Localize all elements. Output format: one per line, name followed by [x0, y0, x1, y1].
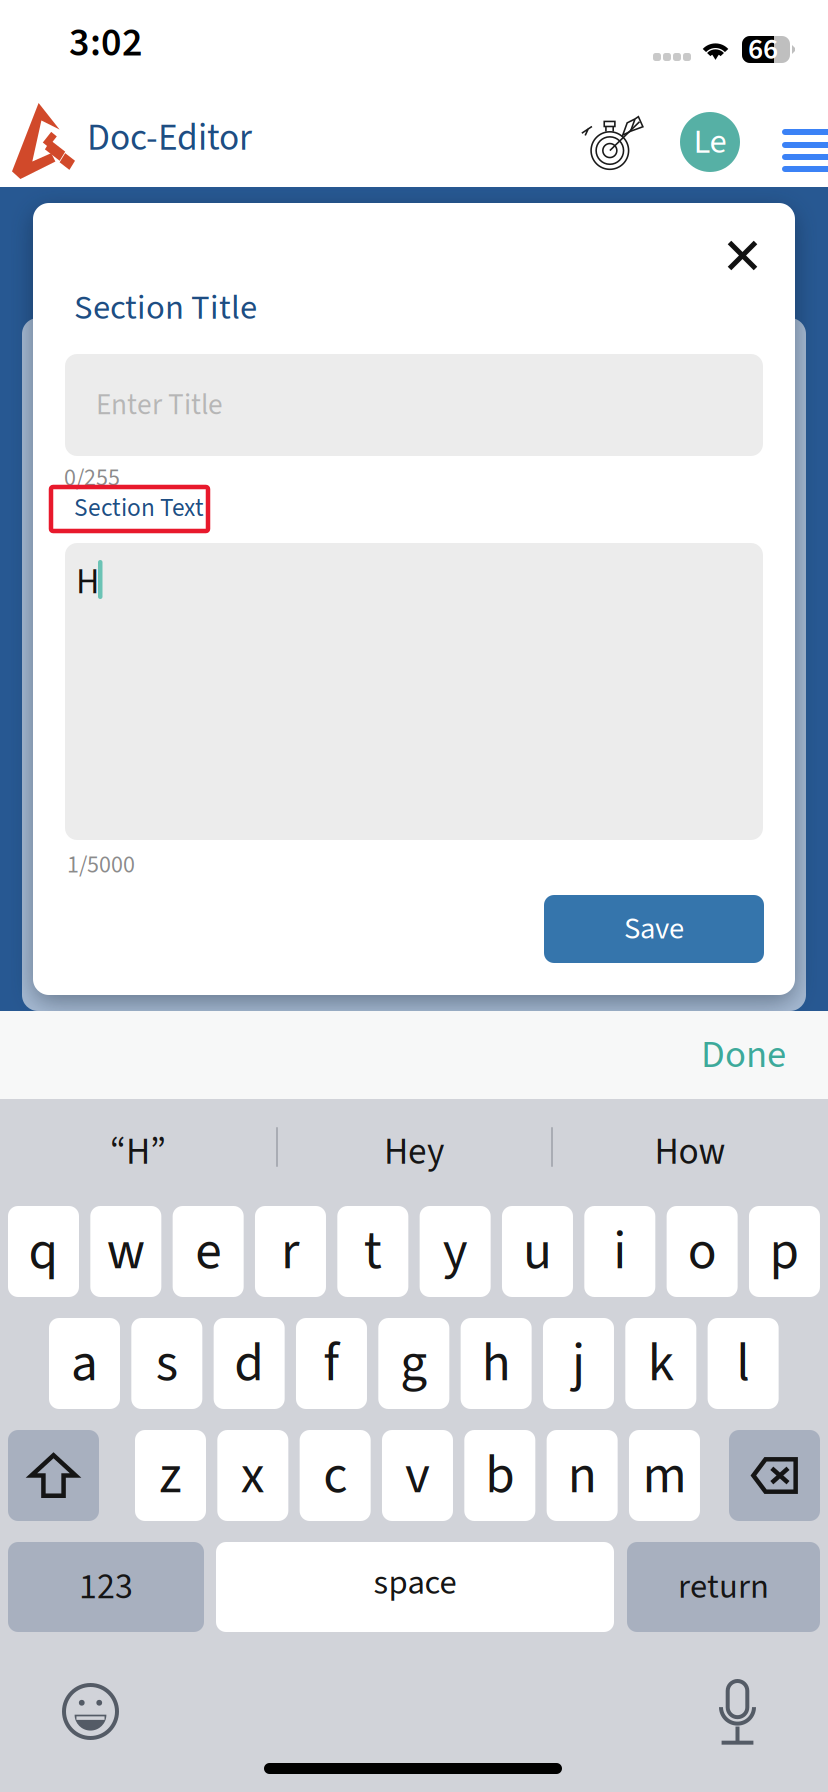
- staticText: v: [405, 1437, 430, 1513]
- button[interactable]: d: [214, 1318, 285, 1409]
- staticText: return: [678, 1562, 769, 1612]
- staticText: i: [613, 1213, 626, 1289]
- staticText: m: [642, 1437, 686, 1513]
- staticText: p: [769, 1213, 799, 1289]
- staticText: l: [736, 1325, 750, 1401]
- staticText: o: [688, 1213, 717, 1289]
- button[interactable]: r: [255, 1206, 326, 1297]
- staticText: w: [107, 1213, 145, 1289]
- button[interactable]: Emoji keyboard: [48, 1669, 133, 1754]
- button[interactable]: Hey: [277, 1106, 551, 1198]
- staticText: s: [156, 1325, 178, 1401]
- staticText: How: [654, 1125, 725, 1179]
- staticText: g: [400, 1325, 427, 1401]
- button[interactable]: y: [420, 1206, 491, 1297]
- button[interactable]: 123: [8, 1542, 204, 1632]
- button[interactable]: f: [296, 1318, 367, 1409]
- button[interactable]: Goals: [588, 115, 644, 171]
- staticText: r: [281, 1213, 300, 1289]
- button[interactable]: i: [584, 1206, 655, 1297]
- staticText: c: [323, 1437, 347, 1513]
- button[interactable]: a: [49, 1318, 120, 1409]
- staticText: Hey: [384, 1125, 444, 1179]
- button[interactable]: x: [217, 1430, 288, 1521]
- staticText: t: [364, 1213, 382, 1289]
- staticText: Done: [701, 1027, 786, 1083]
- button[interactable]: e: [173, 1206, 244, 1297]
- button[interactable]: n: [547, 1430, 618, 1521]
- staticText: n: [568, 1437, 597, 1513]
- staticText: h: [482, 1325, 511, 1401]
- button[interactable]: Account profile: [680, 112, 740, 172]
- staticText: f: [323, 1325, 339, 1401]
- staticText: k: [648, 1325, 674, 1401]
- staticText: 123: [79, 1561, 133, 1613]
- staticText: j: [572, 1325, 585, 1401]
- staticText: Le: [693, 117, 726, 167]
- button[interactable]: p: [749, 1206, 820, 1297]
- staticText: 0/255: [64, 461, 120, 495]
- staticText: b: [485, 1437, 514, 1513]
- button[interactable]: Close: [708, 221, 777, 290]
- button[interactable]: g: [378, 1318, 449, 1409]
- button[interactable]: t: [337, 1206, 408, 1297]
- button[interactable]: v: [382, 1430, 453, 1521]
- button[interactable]: k: [625, 1318, 696, 1409]
- staticText: “H”: [110, 1125, 166, 1179]
- button[interactable]: Shift: [8, 1430, 99, 1521]
- staticText: Enter Title: [96, 384, 223, 426]
- button[interactable]: b: [464, 1430, 535, 1521]
- staticText: 1/5000: [67, 848, 135, 882]
- button[interactable]: z: [135, 1430, 206, 1521]
- staticText: a: [71, 1325, 98, 1401]
- staticText: z: [159, 1437, 182, 1513]
- staticText: Save: [624, 907, 684, 951]
- staticText: x: [241, 1437, 265, 1513]
- button[interactable]: Delete: [729, 1430, 820, 1521]
- staticText: q: [28, 1213, 58, 1289]
- button[interactable]: u: [502, 1206, 573, 1297]
- button[interactable]: w: [90, 1206, 161, 1297]
- staticText: e: [195, 1213, 221, 1289]
- button[interactable]: o: [667, 1206, 738, 1297]
- staticText: d: [234, 1325, 264, 1401]
- staticText: u: [523, 1213, 552, 1289]
- button[interactable]: h: [461, 1318, 532, 1409]
- button[interactable]: “H”: [0, 1106, 276, 1198]
- button[interactable]: Save: [544, 895, 764, 963]
- button[interactable]: m: [629, 1430, 700, 1521]
- staticText: Doc-Editor: [87, 111, 252, 165]
- button[interactable]: Dictation: [703, 1665, 772, 1764]
- staticText: y: [443, 1213, 468, 1289]
- button[interactable]: c: [300, 1430, 371, 1521]
- button[interactable]: space: [216, 1542, 614, 1632]
- staticText: Section Title: [74, 283, 257, 333]
- button[interactable]: q: [8, 1206, 79, 1297]
- button[interactable]: l: [708, 1318, 779, 1409]
- staticText: H: [76, 556, 99, 608]
- staticText: 3:02: [69, 14, 143, 71]
- button[interactable]: s: [131, 1318, 202, 1409]
- button[interactable]: return: [627, 1542, 820, 1632]
- staticText: Section Text: [74, 490, 204, 526]
- staticText: space: [373, 1558, 456, 1608]
- button[interactable]: Done: [646, 1022, 786, 1088]
- staticText: 66: [748, 29, 778, 70]
- button[interactable]: Menu: [782, 121, 828, 179]
- button[interactable]: j: [543, 1318, 614, 1409]
- button[interactable]: How: [552, 1106, 828, 1198]
